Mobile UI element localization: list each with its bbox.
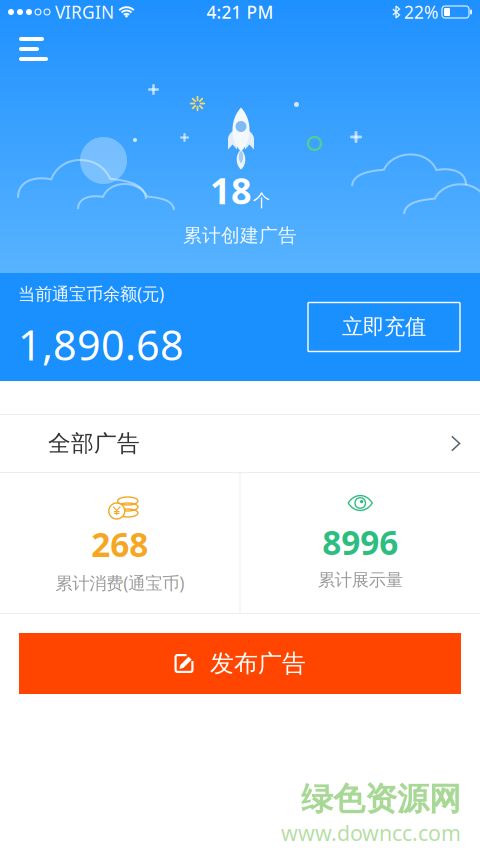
staticText: 18 — [210, 166, 252, 214]
staticText: 累计消费(通宝币) — [55, 571, 184, 594]
staticText: 累计展示量 — [318, 569, 403, 591]
staticText: 8996 — [322, 520, 398, 564]
staticText: 累计创建广告 — [183, 224, 297, 247]
staticText: 4:21 PM — [206, 0, 273, 23]
staticText: 全部广告 — [48, 430, 140, 457]
button[interactable]: 全部广告 — [0, 415, 480, 472]
staticText: 发布广告 — [210, 649, 306, 678]
staticText: 当前通宝币余额(元) — [18, 282, 164, 305]
staticText: 个 — [253, 190, 270, 211]
staticText: 22% — [404, 0, 438, 23]
staticText: 1,890.68 — [18, 317, 184, 372]
button[interactable]: 发布广告 — [19, 633, 461, 694]
button[interactable]: 8996 — [240, 473, 480, 613]
button[interactable]: 268 — [0, 473, 239, 613]
button[interactable]: 立即充值 — [308, 302, 460, 351]
staticText: 268 — [91, 522, 148, 566]
staticText: VIRGIN — [55, 0, 114, 23]
staticText: www.downcc.com — [281, 819, 461, 847]
staticText: 立即充值 — [342, 314, 426, 340]
staticText: 绿色资源网 — [301, 779, 461, 819]
button[interactable]: Menu — [0, 24, 64, 74]
